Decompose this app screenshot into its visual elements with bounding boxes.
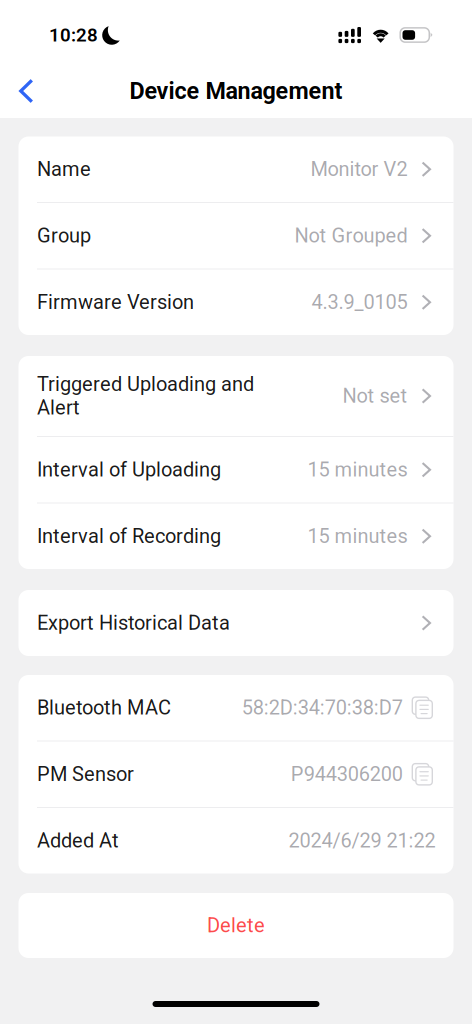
staticText: Triggered Uploading and Alert <box>37 373 254 419</box>
button[interactable]: Copy Bluetooth MAC <box>412 697 432 718</box>
staticText: Not set <box>343 384 408 408</box>
staticText: Firmware Version <box>37 290 194 314</box>
staticText: Bluetooth MAC <box>37 696 171 719</box>
staticText: 58:2D:34:70:38:D7 <box>242 696 403 719</box>
button[interactable]: Interval of Uploading <box>18 437 453 502</box>
staticText: Monitor V2 <box>311 157 408 181</box>
button[interactable]: Back <box>0 68 49 114</box>
staticText: P944306200 <box>291 762 403 786</box>
button[interactable]: Interval of Recording <box>18 503 453 569</box>
staticText: Interval of Recording <box>37 524 221 548</box>
button[interactable]: Firmware Version <box>18 269 453 335</box>
staticText: 15 minutes <box>308 458 408 481</box>
staticText: Export Historical Data <box>37 611 230 635</box>
button[interactable]: Export Historical Data <box>18 590 453 656</box>
staticText: 2024/6/29 21:22 <box>288 829 435 852</box>
staticText: Added At <box>37 829 119 852</box>
staticText: Delete <box>207 914 265 937</box>
staticText: Interval of Uploading <box>37 458 221 481</box>
button[interactable]: Copy PM Sensor <box>412 764 432 785</box>
staticText: Name <box>37 157 91 181</box>
staticText: Device Management <box>129 77 342 105</box>
button[interactable]: Group <box>18 203 453 268</box>
button[interactable]: Delete <box>18 893 453 958</box>
staticText: Group <box>37 224 91 247</box>
staticText: 15 minutes <box>308 524 408 548</box>
staticText: 10:28 <box>49 24 98 46</box>
button[interactable]: Triggered Uploading and Alert <box>18 356 453 436</box>
staticText: 4.3.9_0105 <box>312 290 408 314</box>
staticText: PM Sensor <box>37 762 134 786</box>
staticText: Not Grouped <box>295 224 408 247</box>
button[interactable]: Name <box>18 136 453 202</box>
